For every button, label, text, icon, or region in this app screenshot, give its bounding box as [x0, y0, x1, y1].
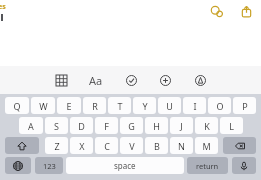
staticText: C	[104, 140, 110, 152]
button[interactable]: X	[70, 137, 93, 154]
staticText: es	[0, 2, 6, 12]
staticText: J	[180, 120, 183, 132]
button[interactable]: Markup	[189, 69, 211, 91]
button[interactable]: C	[95, 137, 118, 154]
button[interactable]: N	[170, 137, 193, 154]
staticText: M	[202, 140, 211, 152]
button[interactable]: R	[83, 97, 106, 114]
button[interactable]: A	[19, 117, 43, 134]
staticText: I	[193, 100, 197, 112]
button[interactable]: Q	[5, 97, 29, 114]
staticText: O	[216, 100, 224, 112]
button[interactable]: P	[233, 97, 256, 114]
button[interactable]: Y	[133, 97, 156, 114]
staticText: G	[128, 120, 135, 132]
button[interactable]: L	[220, 117, 243, 134]
button[interactable]: Dictation	[232, 157, 256, 174]
button[interactable]: F	[95, 117, 118, 134]
button[interactable]: Shift	[5, 137, 39, 154]
staticText: E	[66, 100, 72, 112]
staticText: V	[129, 140, 135, 152]
button[interactable]: B	[145, 137, 168, 154]
staticText: Q	[13, 100, 21, 112]
staticText: A	[28, 120, 34, 132]
button[interactable]: Table	[50, 69, 72, 91]
button[interactable]: Share	[237, 2, 255, 20]
button[interactable]: W	[31, 97, 55, 114]
button[interactable]: I	[183, 97, 206, 114]
button[interactable]: D	[70, 117, 93, 134]
staticText: X	[79, 140, 85, 152]
button[interactable]: Emoji and languages	[5, 157, 31, 174]
staticText: Y	[142, 100, 148, 112]
staticText: Z	[54, 140, 60, 152]
staticText: N	[178, 140, 185, 152]
button[interactable]: Delete	[223, 137, 256, 154]
staticText: T	[117, 100, 123, 112]
staticText: B	[154, 140, 160, 152]
button[interactable]: M	[195, 137, 218, 154]
button[interactable]: O	[208, 97, 231, 114]
staticText: R	[92, 100, 98, 112]
button[interactable]: Aa	[85, 69, 107, 91]
button[interactable]: Checklist	[120, 69, 142, 91]
button[interactable]: E	[57, 97, 81, 114]
button[interactable]: H	[145, 117, 168, 134]
staticText: P	[242, 100, 248, 112]
button[interactable]: Add attachment	[154, 69, 176, 91]
staticText: W	[39, 100, 48, 112]
button[interactable]: U	[158, 97, 181, 114]
staticText: 123	[43, 161, 56, 171]
staticText: return	[196, 161, 219, 171]
staticText: Aa	[89, 73, 103, 88]
button[interactable]: 123	[35, 157, 63, 174]
staticText: L	[229, 120, 234, 132]
button[interactable]: space	[66, 157, 184, 174]
button[interactable]: K	[195, 117, 218, 134]
button[interactable]: T	[108, 97, 131, 114]
button[interactable]: return	[187, 157, 228, 174]
staticText: S	[54, 120, 59, 132]
button[interactable]: J	[170, 117, 193, 134]
staticText: U	[166, 100, 173, 112]
staticText: D	[78, 120, 85, 132]
button[interactable]: S	[45, 117, 68, 134]
staticText: F	[104, 120, 109, 132]
staticText: H	[153, 120, 160, 132]
button[interactable]: V	[120, 137, 143, 154]
button[interactable]: Add collaborator	[207, 2, 225, 20]
button[interactable]: G	[120, 117, 143, 134]
button[interactable]: Z	[45, 137, 68, 154]
staticText: K	[204, 120, 210, 132]
staticText: space	[114, 160, 136, 171]
